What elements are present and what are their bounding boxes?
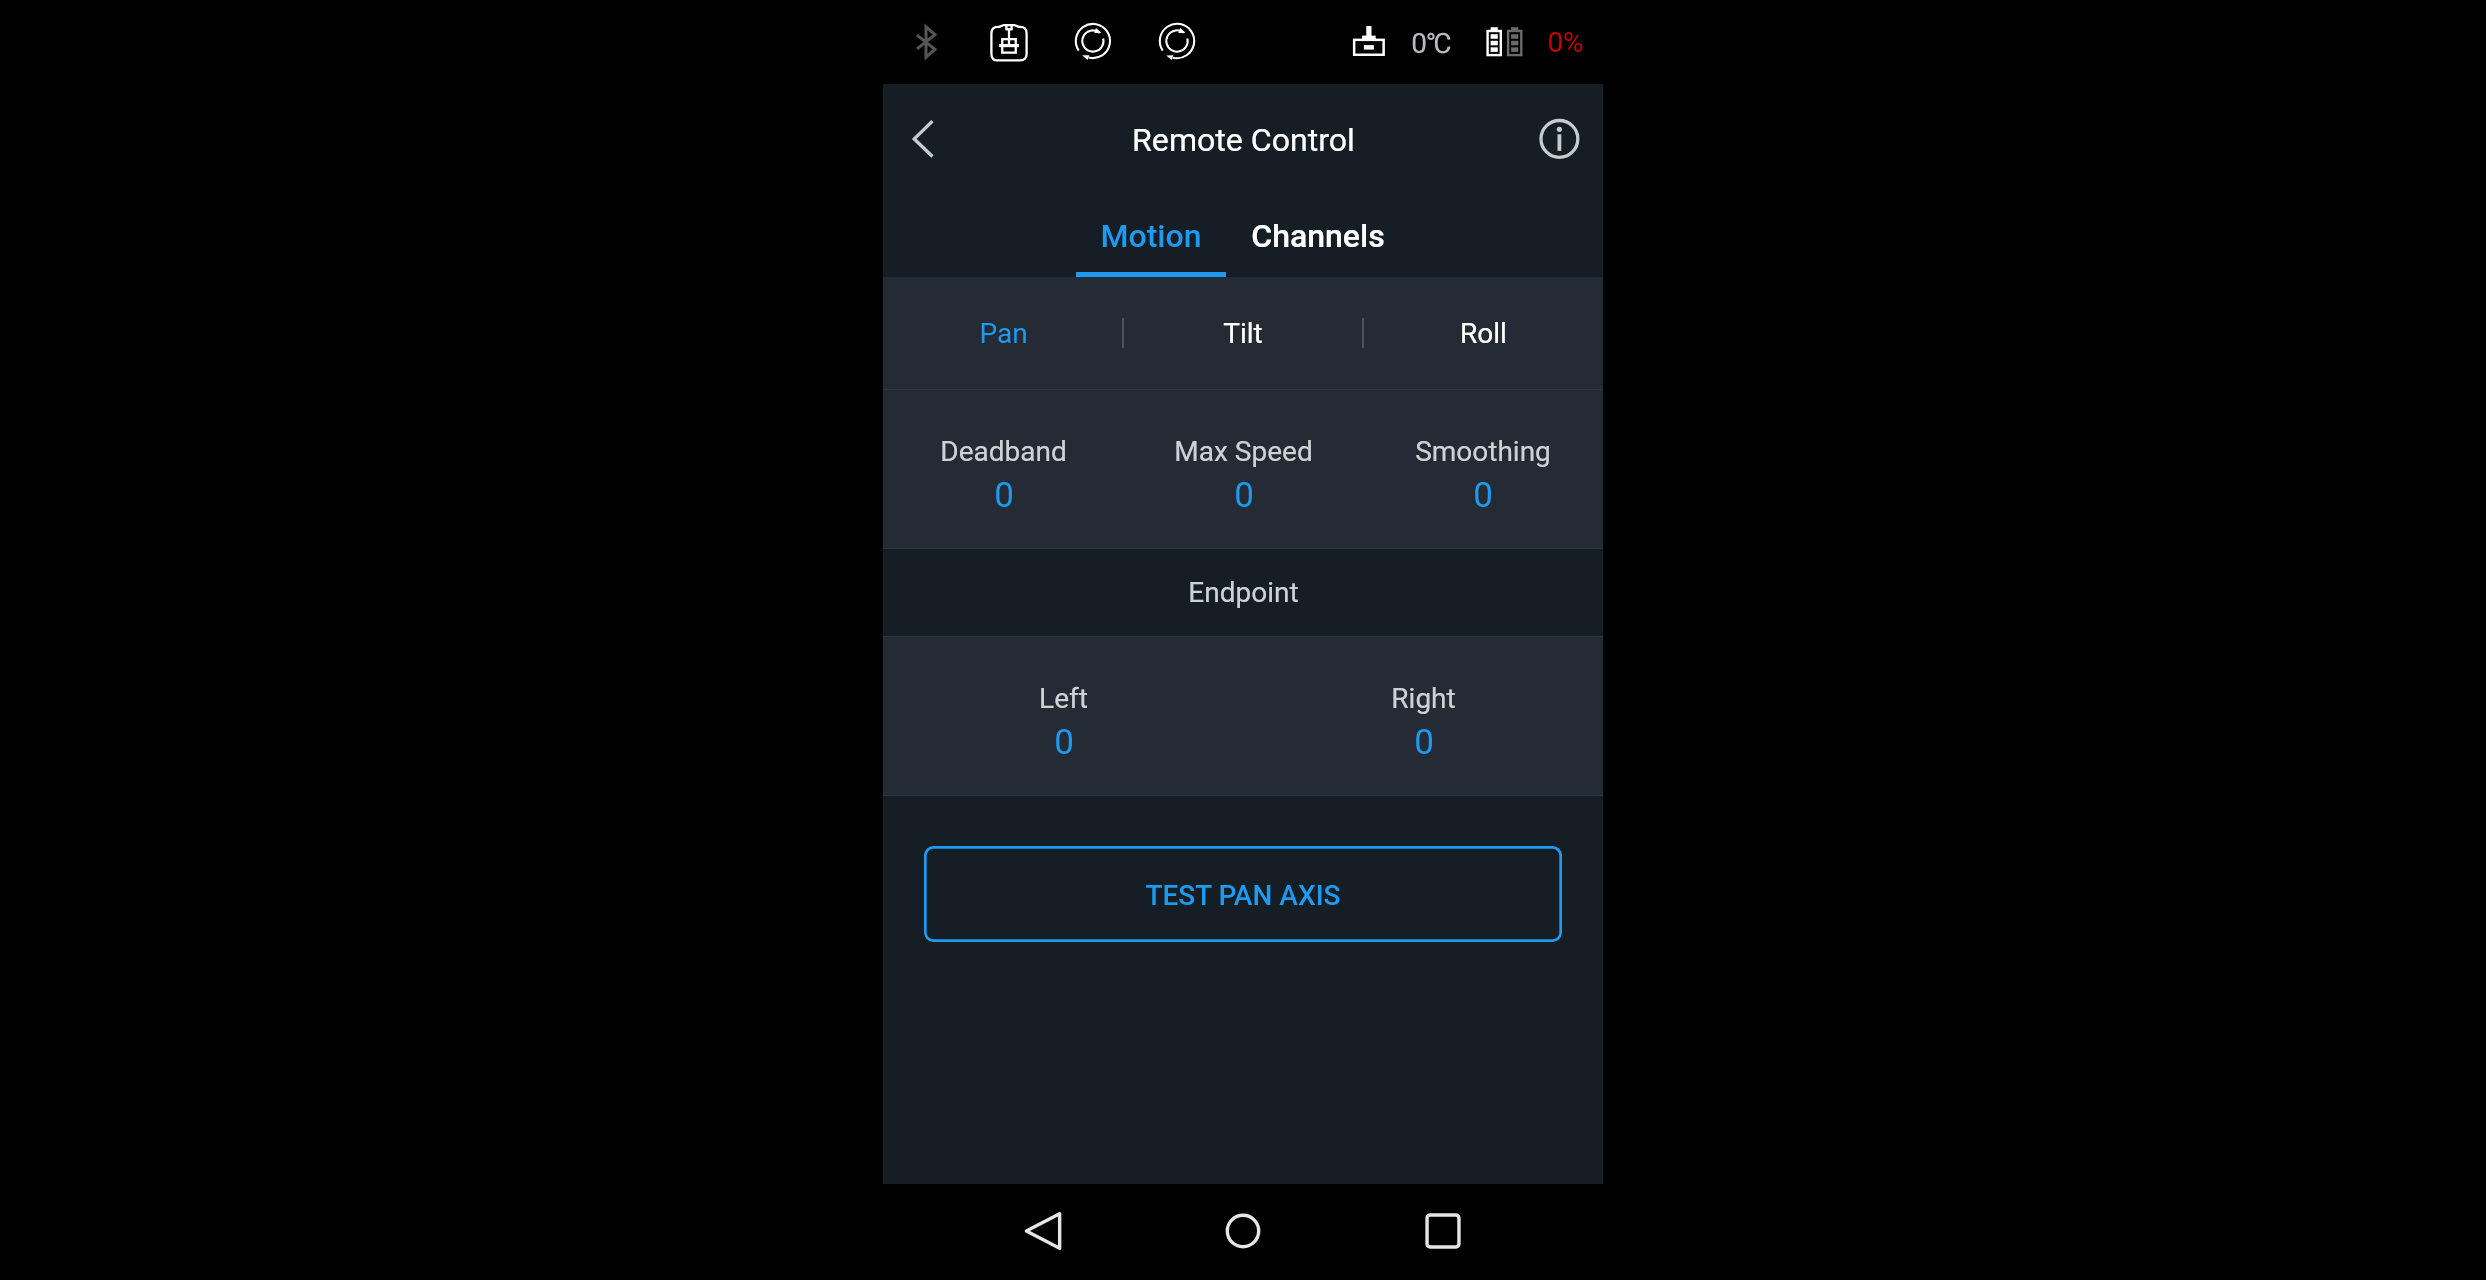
button[interactable]: TEST PAN AXIS <box>924 846 1562 942</box>
staticText: Motion <box>1100 217 1202 255</box>
staticText: Deadband <box>940 435 1067 468</box>
button[interactable]: Info <box>1503 84 1603 196</box>
staticText: 0 <box>1054 722 1074 763</box>
button[interactable]: Recent apps <box>1343 1184 1543 1280</box>
staticText: Left <box>1039 682 1088 715</box>
button[interactable]: Motion <box>1076 196 1226 277</box>
button[interactable]: Pan <box>883 277 1123 389</box>
button[interactable]: Deadband <box>883 390 1123 548</box>
staticText: Smoothing <box>1415 435 1551 468</box>
button[interactable]: Tilt <box>1123 277 1363 389</box>
staticText: 0 <box>1414 722 1434 763</box>
staticText: Right <box>1391 682 1456 715</box>
button[interactable]: Back <box>943 1184 1143 1280</box>
button[interactable]: Roll <box>1363 277 1603 389</box>
button[interactable]: Channels <box>1226 196 1410 277</box>
button[interactable]: Left <box>883 637 1243 795</box>
button[interactable]: Home <box>1143 1184 1343 1280</box>
button[interactable]: Max Speed <box>1123 390 1363 548</box>
button[interactable]: Smoothing <box>1363 390 1603 548</box>
button[interactable]: Navigate up <box>883 84 983 196</box>
staticText: 0% <box>1547 26 1584 59</box>
staticText: Endpoint <box>1188 576 1299 609</box>
staticText: Roll <box>1460 317 1507 350</box>
staticText: Pan <box>979 317 1028 350</box>
staticText: Max Speed <box>1174 435 1313 468</box>
staticText: Remote Control <box>1132 121 1355 159</box>
staticText: Tilt <box>1223 317 1263 350</box>
staticText: 0 <box>1473 475 1493 516</box>
staticText: TEST PAN AXIS <box>1145 879 1341 912</box>
staticText: 0 <box>1234 475 1254 516</box>
staticText: 0℃ <box>1411 27 1452 60</box>
staticText: Channels <box>1251 217 1385 255</box>
button[interactable]: Right <box>1243 637 1603 795</box>
staticText: 0 <box>994 475 1014 516</box>
